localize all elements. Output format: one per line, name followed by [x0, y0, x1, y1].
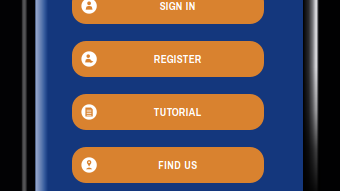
staticText: REGISTER — [154, 51, 202, 66]
button[interactable]: SIGN IN — [72, 0, 264, 24]
staticText: FIND US — [158, 157, 197, 172]
button[interactable]: FIND US — [72, 147, 264, 183]
button[interactable]: TUTORIAL — [72, 94, 264, 130]
staticText: TUTORIAL — [154, 104, 202, 119]
button[interactable]: REGISTER — [72, 41, 264, 77]
staticText: SIGN IN — [160, 0, 196, 13]
